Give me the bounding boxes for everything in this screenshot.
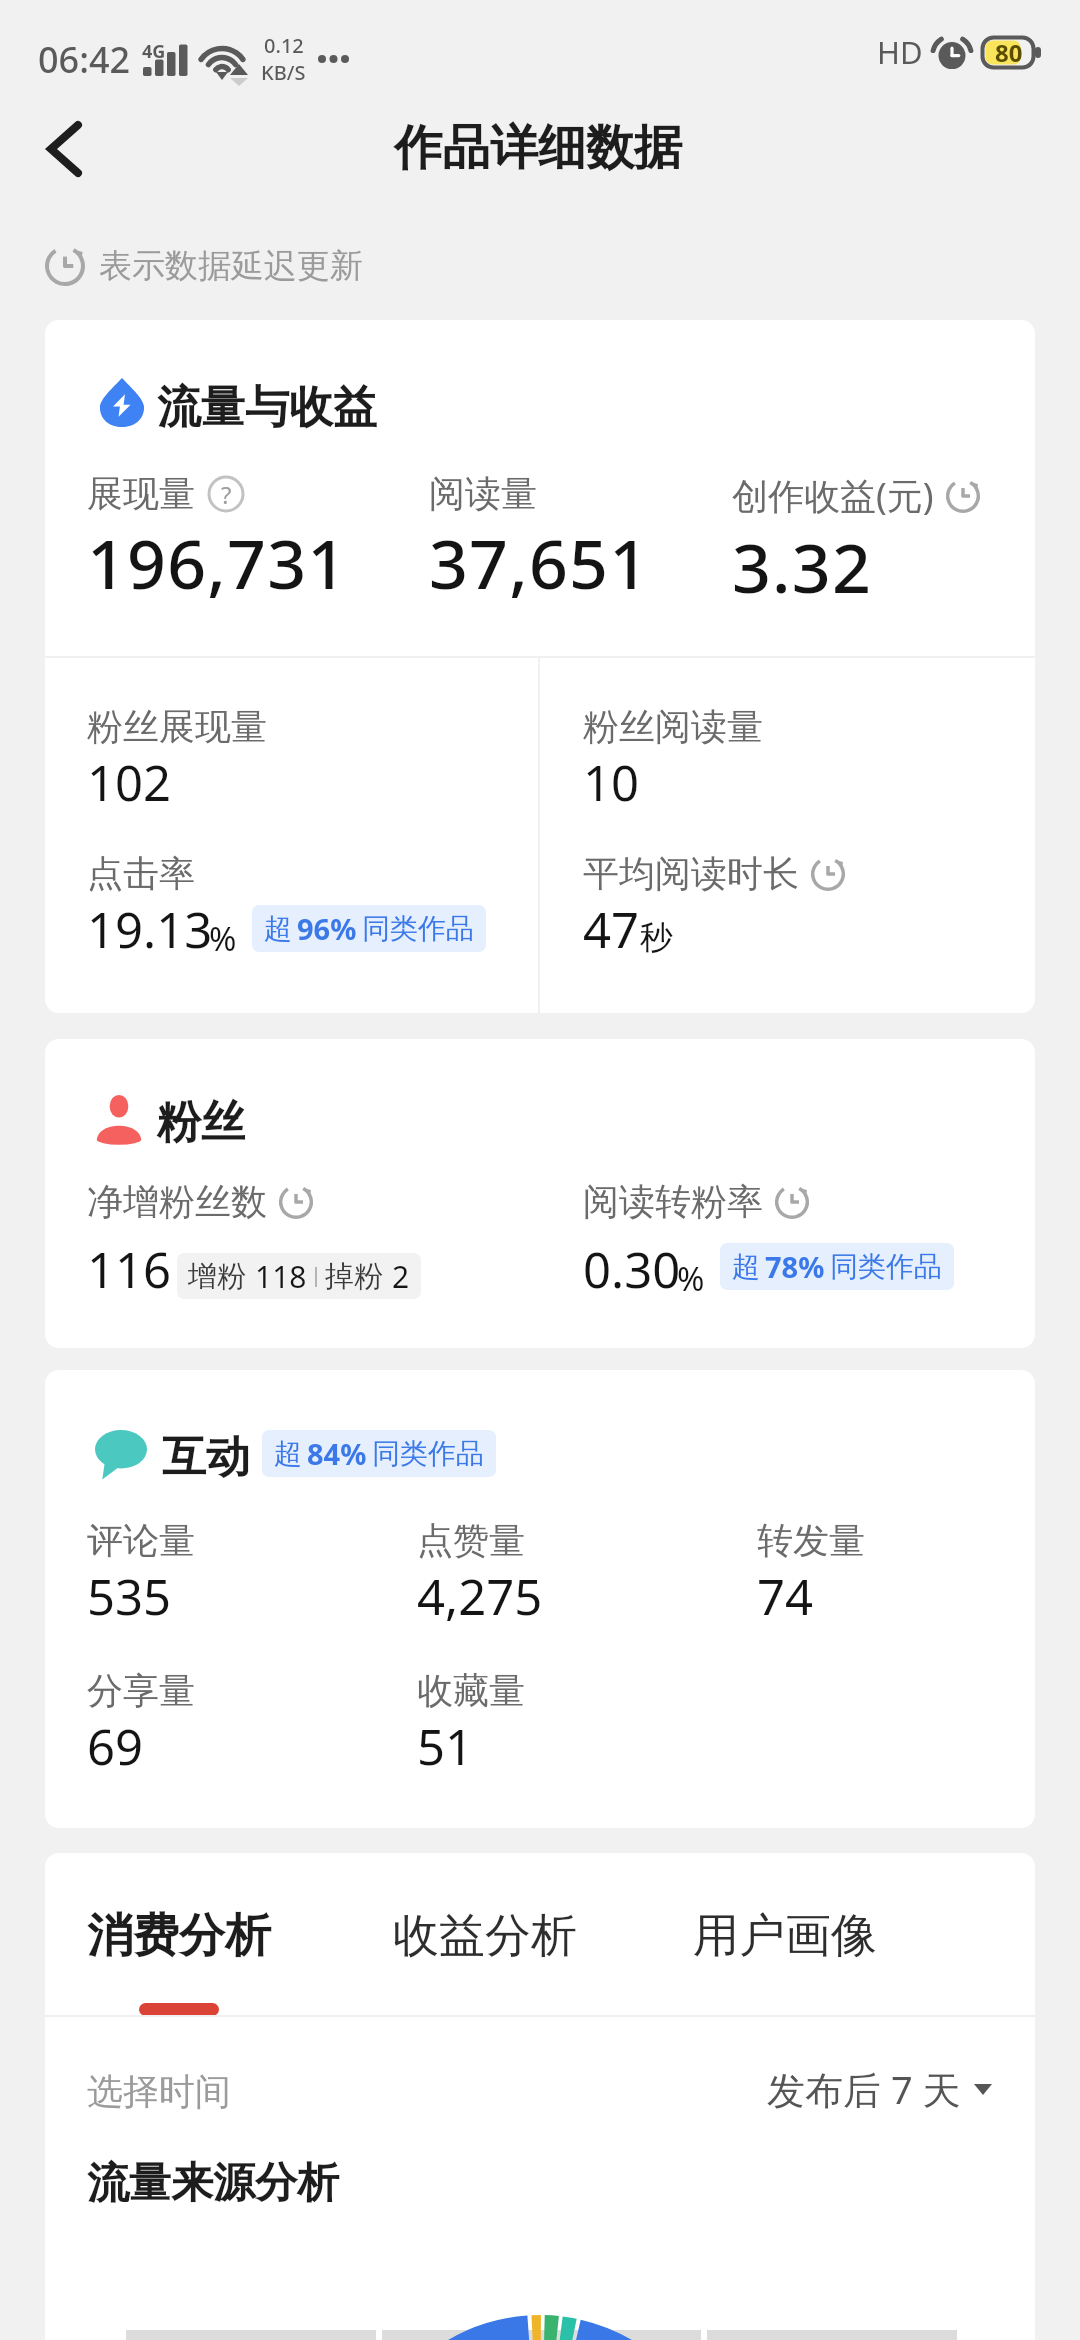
staticText: 收藏量 [417,1668,525,1713]
staticText: 互动 [162,1430,250,1485]
button[interactable]: 用户画像 [693,1907,877,2003]
staticText: 74 [757,1563,814,1630]
staticText: 超 [264,911,292,946]
staticText: 流量与收益 [157,380,377,435]
staticText: 粉丝 [157,1095,245,1150]
staticText: 增粉 [188,1258,246,1295]
staticText: 展现量 [87,471,195,516]
staticText: 同类作品 [362,911,474,946]
staticText: 96% [297,909,357,948]
staticText: 10 [583,749,640,816]
staticText: 3.32 [732,520,872,613]
staticText: 116 [87,1236,172,1303]
staticText: 评论量 [87,1518,195,1563]
staticText: 47 [583,896,640,963]
staticText: ? [221,478,232,511]
staticText: 37,651 [429,516,650,609]
staticText: 掉粉 [325,1258,383,1295]
staticText: 用户画像 [693,1907,877,1965]
staticText: 净增粉丝数 [87,1179,267,1224]
staticText: 作品详细数据 [394,118,682,178]
staticText: 阅读量 [429,471,537,516]
staticText: 创作收益(元) [732,471,934,520]
staticText: 102 [87,749,172,816]
staticText: 阅读转粉率 [583,1179,763,1224]
staticText: 选择时间 [87,2069,231,2114]
staticText: 消费分析 [87,1907,271,1965]
staticText: 发布后 7 天 [767,2063,961,2115]
staticText: 粉丝展现量 [87,704,267,749]
staticText: 118 [255,1256,307,1297]
staticText: 分享量 [87,1668,195,1713]
button[interactable]: 消费分析 [87,1907,271,2016]
staticText: 转发量 [757,1518,865,1563]
button[interactable]: 收益分析 [393,1907,577,2003]
staticText: % [209,916,237,961]
staticText: 同类作品 [830,1249,942,1284]
staticText: 19.13 [87,896,213,963]
staticText: 点赞量 [417,1518,525,1563]
staticText: 收益分析 [393,1907,577,1965]
staticText: 0.12 [264,32,304,59]
staticText: 超 [732,1249,760,1284]
button[interactable]: 发布后 7 天 [767,2063,992,2115]
staticText: 表示数据延迟更新 [99,245,363,287]
staticText: 69 [87,1713,144,1780]
staticText: 78% [765,1247,825,1286]
staticText: 196,731 [87,516,348,609]
staticText: 535 [87,1563,172,1630]
button[interactable]: Back [16,101,112,197]
staticText: 点击率 [87,851,195,896]
staticText: 流量来源分析 [87,2157,339,2210]
staticText: 平均阅读时长 [583,851,799,896]
staticText: 80 [995,36,1023,69]
staticText: 2 [392,1256,410,1297]
staticText: 4G [142,39,166,64]
staticText: 51 [417,1713,474,1780]
staticText: HD [877,31,923,73]
staticText: 0.30 [583,1236,681,1303]
staticText: % [677,1256,705,1301]
staticText: 超 [274,1436,302,1471]
staticText: KB/S [261,59,306,86]
staticText: 同类作品 [372,1436,484,1471]
staticText: 06:42 [38,35,131,84]
staticText: 粉丝阅读量 [583,704,763,749]
staticText: 84% [307,1434,367,1473]
staticText: 4,275 [417,1563,543,1630]
staticText: 秒 [640,917,673,959]
